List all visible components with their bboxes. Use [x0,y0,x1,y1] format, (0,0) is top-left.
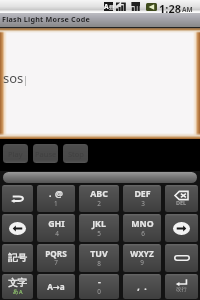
button[interactable]: A→a [37,274,75,299]
staticText: 7 [54,258,58,267]
staticText: 文字 [8,277,27,289]
button[interactable]: Space [165,244,198,272]
button[interactable]: PQRS 7 [37,244,75,272]
button[interactable]: Undo [2,185,33,212]
button[interactable]: - 0 [79,274,119,299]
button[interactable]: , . [123,274,161,299]
button[interactable]: Delete [165,185,198,212]
button[interactable]: Cursor right [165,214,198,242]
staticText: PQRS [45,248,67,259]
staticText: 1:28 [159,1,181,14]
button[interactable]: TUV 8 [79,244,119,272]
staticText: 亜 [109,4,113,10]
button[interactable]: Cursor left [2,214,33,242]
staticText: 5 [97,229,101,238]
staticText: 改行 [176,286,187,293]
staticText: A [19,288,23,295]
button[interactable]: GHI 4 [37,214,75,242]
staticText: AM [182,5,193,14]
staticText: GHI [48,218,65,230]
staticText: 1 [54,199,58,208]
staticText: 3 [141,199,145,208]
staticText: MNO [131,218,154,230]
staticText: DEF [134,188,151,200]
button[interactable]: WXYZ 9 [123,244,161,272]
button[interactable]: Stop [63,144,88,163]
button[interactable]: 記号 [2,244,33,272]
button[interactable]: Character mode [2,274,33,299]
staticText: 2 [97,199,101,208]
staticText: WXYZ [130,248,154,259]
staticText: 0 [97,287,101,296]
staticText: ABC [90,188,108,200]
staticText: 9 [140,258,144,267]
staticText: TUV [90,248,108,260]
staticText: . [49,188,52,200]
button[interactable]: ABC 2 [79,185,119,212]
staticText: A [104,2,109,11]
button[interactable]: JKL 5 [79,214,119,242]
staticText: @ [55,188,63,200]
staticText: 記号 [8,252,27,264]
staticText: JKL [92,218,106,230]
staticText: あ [13,288,19,295]
button[interactable]: Pause [33,144,58,163]
button[interactable]: Enter [165,274,198,299]
button[interactable]: DEF 3 [123,185,161,212]
staticText: sos [3,69,24,87]
button[interactable]: Candidates [3,172,197,183]
staticText: 6 [141,229,145,238]
button[interactable]: Play [3,144,28,163]
staticText: 4 [55,229,59,238]
staticText: DEL [176,199,187,206]
staticText: - [98,276,101,288]
button[interactable]: .@ 1 [37,185,75,212]
staticText: , . [137,281,147,293]
staticText: 8 [97,259,101,268]
staticText: A→a [47,281,65,292]
button[interactable]: MNO 6 [123,214,161,242]
staticText: Flash Light Morse Code [2,14,90,24]
